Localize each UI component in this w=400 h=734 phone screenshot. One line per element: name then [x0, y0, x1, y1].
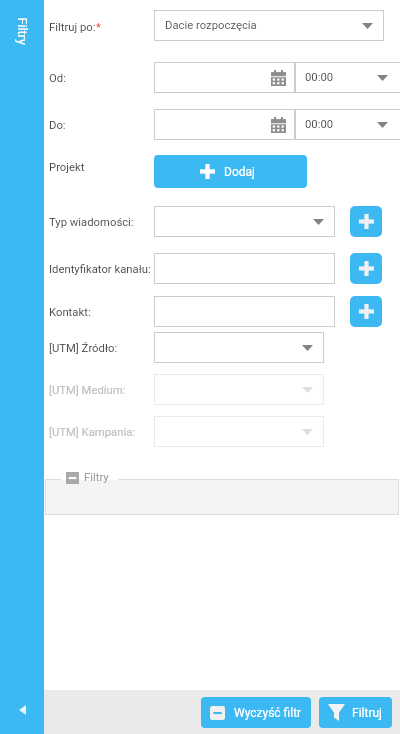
staticText: Dodaj — [224, 165, 255, 179]
staticText: 00:00 — [305, 71, 334, 84]
button[interactable] — [154, 416, 324, 447]
button[interactable] — [154, 62, 295, 93]
staticText: Typ wiadomości: — [49, 216, 134, 229]
staticText: Filtruj po: — [49, 21, 96, 34]
button[interactable]: Filtruj — [319, 697, 392, 728]
button[interactable]: Dodaj — [350, 296, 382, 327]
button[interactable]: Dodaj — [350, 253, 382, 284]
button[interactable] — [154, 253, 335, 284]
staticText: Filtry — [84, 471, 109, 484]
button[interactable] — [154, 296, 335, 327]
button[interactable]: Dacie rozpoczęcia — [154, 10, 384, 41]
button[interactable]: Wyczyść filtr — [201, 697, 311, 728]
staticText: Identyfikator kanału: — [49, 263, 151, 276]
staticText: [UTM] Kampania: — [49, 426, 136, 439]
staticText: Filtry — [14, 17, 29, 45]
button[interactable]: Dodaj — [154, 155, 307, 188]
staticText: 00:00 — [305, 118, 334, 131]
staticText: [UTM] Medium: — [49, 384, 126, 397]
button[interactable] — [154, 206, 335, 237]
button[interactable]: 00:00 — [295, 109, 400, 140]
button[interactable]: Zwiń Filtry — [66, 471, 109, 484]
staticText: Wyczyść filtr — [234, 706, 302, 720]
button[interactable]: Dodaj — [350, 206, 382, 237]
staticText: [UTM] Źródło: — [49, 342, 118, 355]
staticText: Od: — [49, 72, 66, 85]
staticText: * — [96, 21, 101, 34]
staticText: Do: — [49, 119, 66, 132]
staticText: Dacie rozpoczęcia — [165, 19, 257, 32]
staticText: Projekt — [49, 161, 85, 174]
button[interactable]: 00:00 — [295, 62, 400, 93]
staticText: Kontakt: — [49, 306, 91, 319]
staticText: Filtruj — [352, 706, 382, 720]
button[interactable]: Filtry — [0, 0, 44, 734]
button[interactable] — [154, 374, 324, 405]
button[interactable] — [154, 109, 295, 140]
button[interactable] — [154, 332, 324, 363]
